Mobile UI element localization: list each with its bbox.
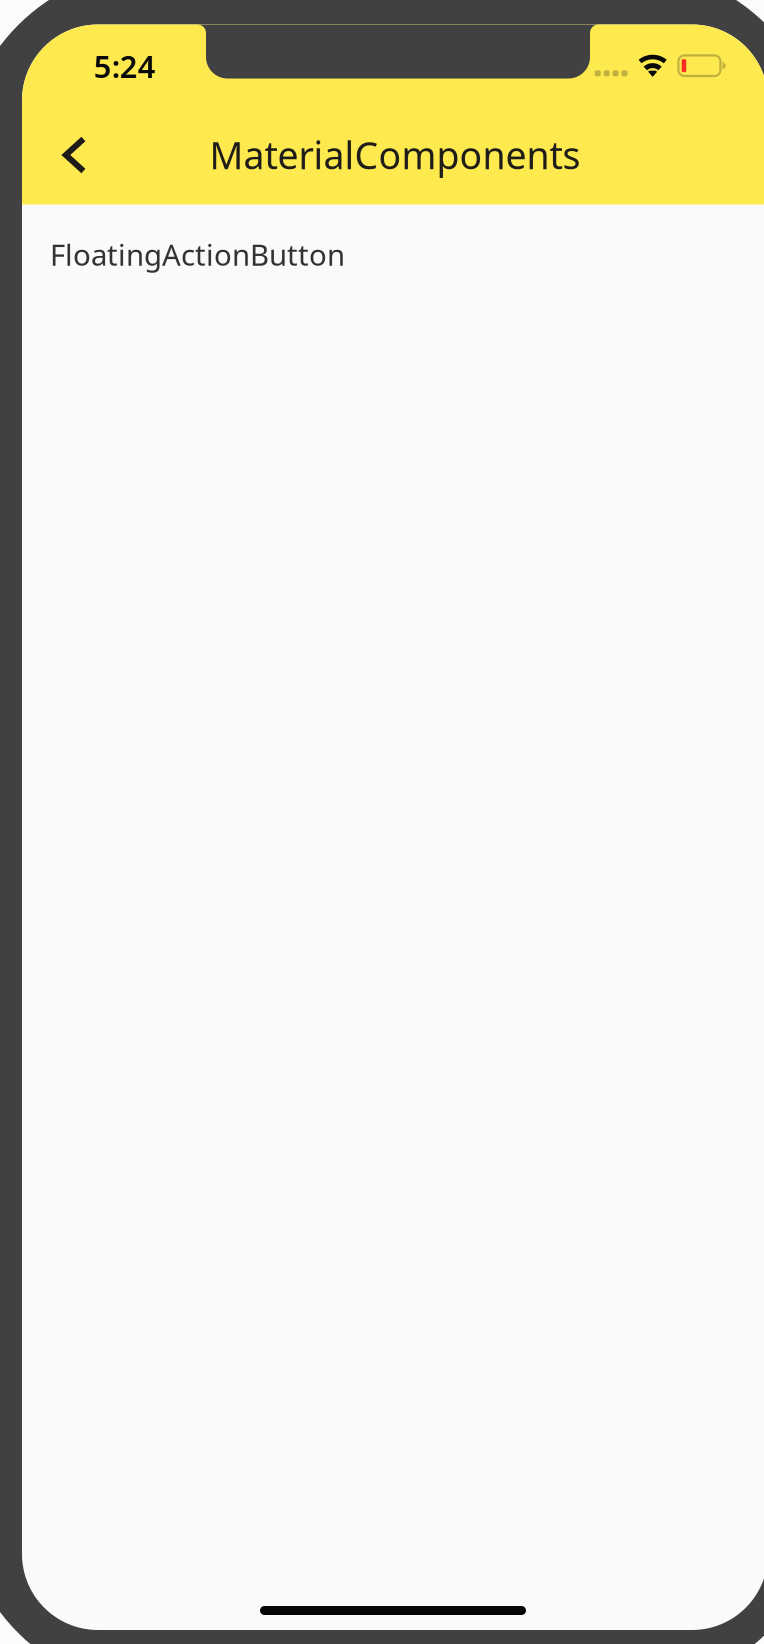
button[interactable]: Back [41,116,107,194]
button[interactable]: FloatingActionButton [22,204,764,314]
staticText: MaterialComponents [209,130,580,180]
staticText: 5:24 [94,46,156,86]
staticText: FloatingActionButton [50,235,345,274]
